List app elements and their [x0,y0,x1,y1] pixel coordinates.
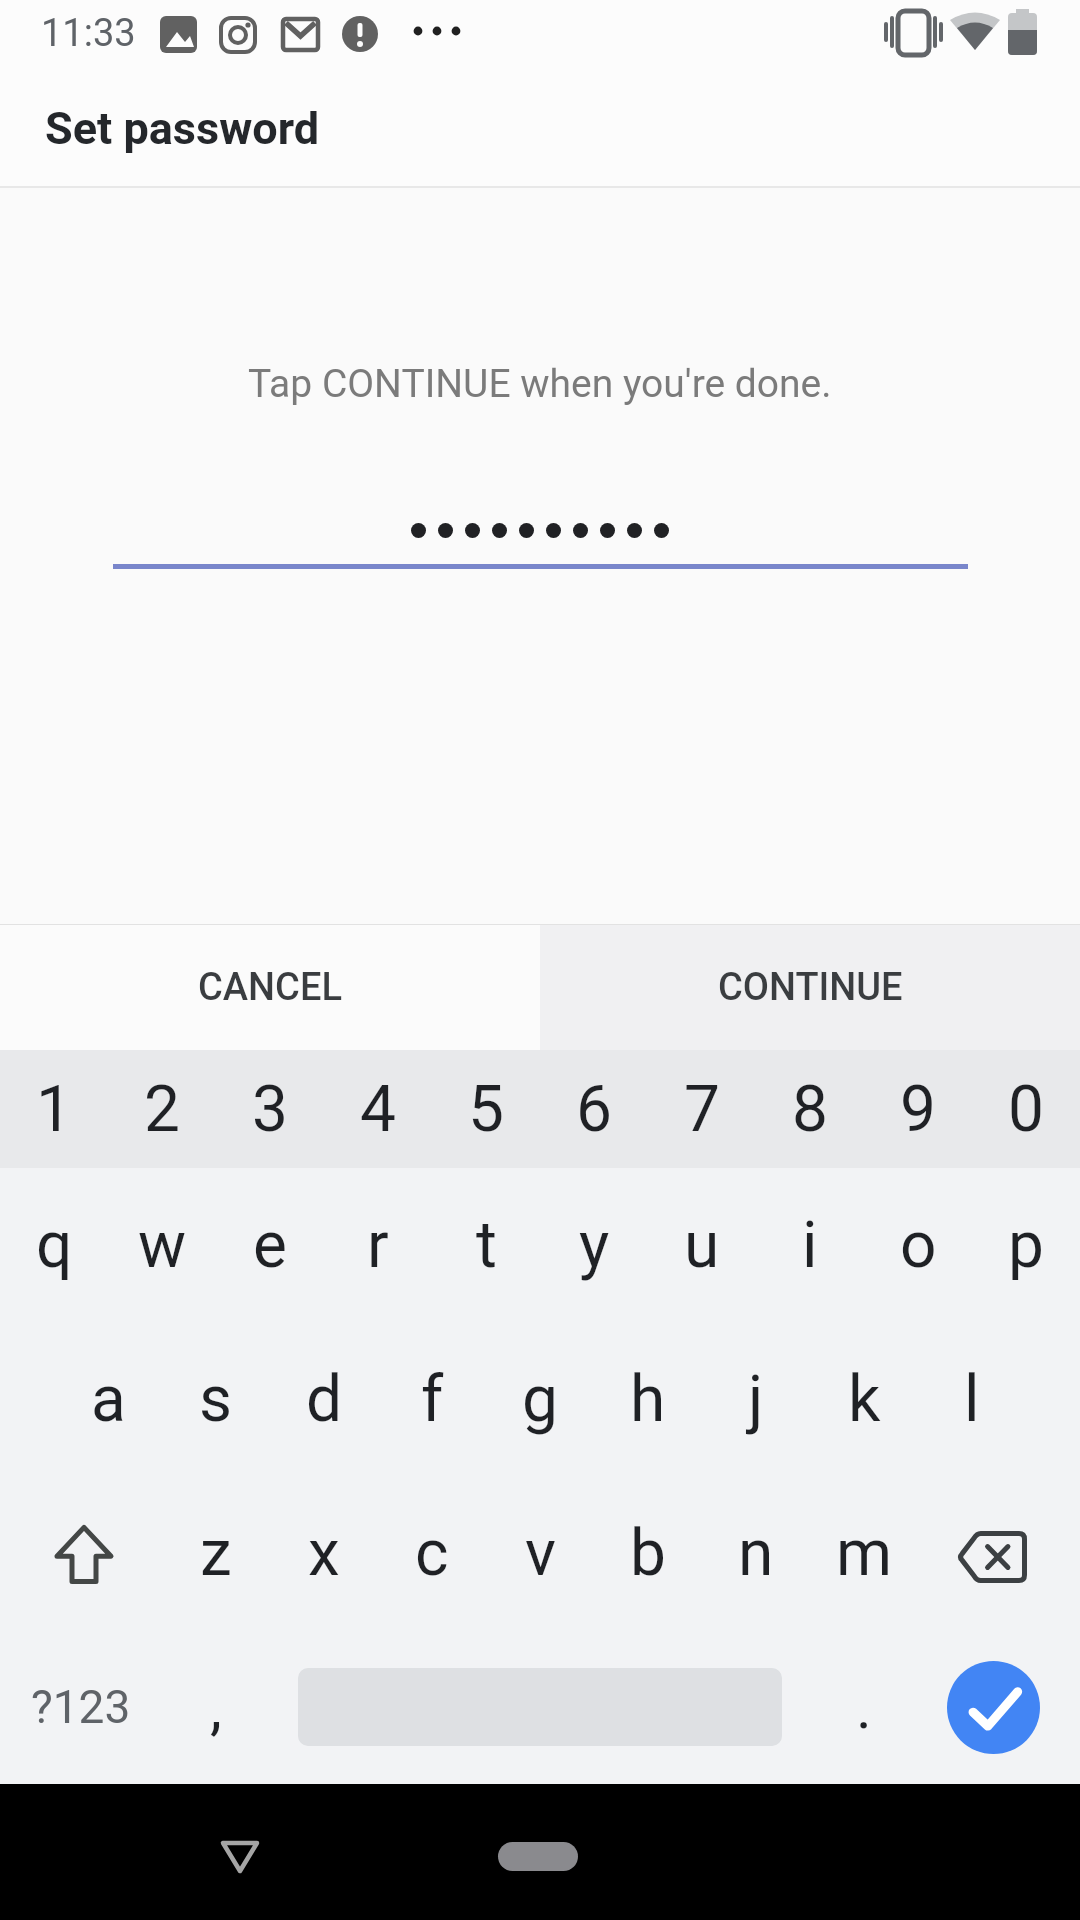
staticText: t [476,1208,497,1283]
button[interactable]: 9 [864,1050,972,1168]
staticText: x [308,1516,340,1591]
staticText: n [738,1516,774,1591]
button[interactable]: 3 [216,1050,324,1168]
staticText: m [836,1516,893,1591]
staticText: v [525,1516,556,1591]
button[interactable]: b [594,1476,702,1630]
button[interactable]: 4 [324,1050,432,1168]
staticText: d [306,1362,343,1437]
staticText: 0 [1008,1072,1044,1147]
staticText: , [210,1672,222,1742]
staticText: r [367,1208,389,1283]
button[interactable]: t [432,1168,540,1322]
button[interactable]: p [972,1168,1080,1322]
button[interactable]: d [270,1322,378,1476]
button[interactable]: 7 [648,1050,756,1168]
staticText: l [964,1362,980,1437]
staticText: i [802,1208,818,1283]
staticText: u [684,1208,720,1283]
button[interactable]: l [918,1322,1026,1476]
staticText: 7 [684,1072,720,1147]
button[interactable]: g [486,1322,594,1476]
button[interactable]: z [162,1476,270,1630]
staticText: g [522,1362,558,1437]
button[interactable]: h [594,1322,702,1476]
staticText: e [253,1208,287,1283]
staticText: a [91,1362,126,1437]
staticText: 1 [36,1072,72,1147]
staticText: . [856,1672,872,1742]
button[interactable]: k [810,1322,918,1476]
staticText: b [630,1516,666,1591]
staticText: 2 [144,1072,180,1147]
button[interactable]: n [702,1476,810,1630]
staticText: CONTINUE [718,965,903,1010]
staticText: q [36,1208,73,1283]
staticText: 8 [792,1072,828,1147]
staticText: 3 [252,1072,288,1147]
staticText: 9 [900,1072,936,1147]
button[interactable]: c [378,1476,486,1630]
button[interactable]: ?123 [0,1630,162,1784]
staticText: 5 [468,1072,504,1147]
button[interactable]: w [108,1168,216,1322]
button[interactable]: v [486,1476,594,1630]
staticText: p [1008,1208,1044,1283]
button[interactable]: x [270,1476,378,1630]
button[interactable]: 6 [540,1050,648,1168]
staticText: h [630,1362,666,1437]
button[interactable]: , [162,1630,270,1784]
button[interactable]: . [810,1630,918,1784]
button[interactable]: CONTINUE [540,925,1080,1050]
button[interactable] [498,1832,578,1881]
button[interactable]: 2 [108,1050,216,1168]
staticText: j [748,1362,764,1437]
button[interactable]: s [162,1322,270,1476]
staticText: CANCEL [198,965,342,1010]
button[interactable]: 5 [432,1050,540,1168]
staticText: y [579,1208,610,1283]
button[interactable]: y [540,1168,648,1322]
staticText: 4 [360,1072,396,1147]
button[interactable]: u [648,1168,756,1322]
button[interactable]: r [324,1168,432,1322]
staticText: Tap CONTINUE when you're done. [248,361,832,407]
staticText: w [138,1208,187,1283]
button[interactable] [918,1630,1080,1784]
button[interactable]: q [0,1168,108,1322]
button[interactable]: 0 [972,1050,1080,1168]
button[interactable]: CANCEL [0,925,540,1050]
button[interactable] [270,1630,810,1784]
staticText: s [199,1362,233,1437]
button[interactable]: f [378,1322,486,1476]
staticText: f [421,1362,444,1437]
button[interactable]: i [756,1168,864,1322]
button[interactable] [0,1476,162,1630]
staticText: c [415,1516,449,1591]
staticText: 11:33 [41,11,136,56]
staticText: ?123 [31,1680,131,1734]
staticText: z [200,1516,232,1591]
staticText: k [848,1362,881,1437]
staticText: Set password [45,102,320,155]
staticText: o [900,1208,937,1283]
button[interactable]: j [702,1322,810,1476]
button[interactable]: 8 [756,1050,864,1168]
staticText: 6 [576,1072,612,1147]
button[interactable]: m [810,1476,918,1630]
button[interactable]: e [216,1168,324,1322]
button[interactable] [200,1816,280,1896]
button[interactable] [918,1476,1080,1630]
button[interactable]: a [54,1322,162,1476]
button[interactable]: o [864,1168,972,1322]
button[interactable]: 1 [0,1050,108,1168]
